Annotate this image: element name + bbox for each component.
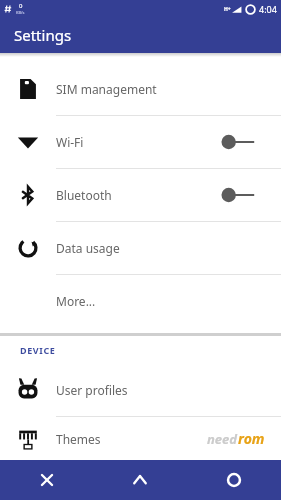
button[interactable]: Wi-Fi [0, 116, 281, 168]
button[interactable]: Themes [0, 417, 281, 460]
button[interactable]: Recents [187, 460, 281, 500]
button[interactable]: SIM management [0, 63, 281, 115]
staticText: SIM management [56, 81, 281, 97]
button[interactable]: Data usage [0, 222, 281, 274]
button[interactable]: Bluetooth [0, 169, 281, 221]
button[interactable]: User profiles [0, 364, 281, 416]
staticText: 4:04 [259, 3, 277, 15]
button[interactable]: Back [0, 460, 93, 500]
staticText: H+ [224, 6, 231, 13]
staticText: rom [238, 429, 265, 448]
staticText: Wi-Fi [56, 134, 219, 150]
staticText: User profiles [56, 382, 281, 398]
staticText: Data usage [56, 240, 281, 256]
button[interactable]: Home [93, 460, 187, 500]
button[interactable]: More... [0, 275, 281, 327]
staticText: More... [56, 293, 281, 309]
staticText: 0 [19, 2, 23, 10]
staticText: Bluetooth [56, 187, 219, 203]
staticText: need [207, 430, 238, 448]
staticText: Settings [14, 25, 72, 45]
staticText: DEVICE [20, 344, 56, 356]
staticText: KB/s [16, 10, 25, 15]
staticText: Themes [56, 431, 281, 447]
